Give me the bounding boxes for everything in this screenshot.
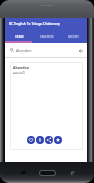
button[interactable]: Abandon	[11, 63, 82, 149]
button[interactable]: Favorite	[27, 136, 35, 144]
button[interactable]: RECENT	[60, 29, 87, 41]
staticText: FAVORITE	[40, 35, 54, 39]
staticText: Abandon	[13, 65, 30, 70]
staticText: RECENT	[68, 35, 79, 39]
button[interactable]: HOME	[5, 29, 33, 41]
staticText: HOME	[15, 35, 24, 39]
staticText: ఆబండన్	[13, 71, 25, 76]
button[interactable]: Bookmark	[54, 136, 62, 144]
staticText: BC English To Telugu Dictionary	[9, 21, 60, 26]
button[interactable]: Home	[40, 171, 55, 175]
staticText: Abandon	[16, 48, 32, 53]
button[interactable]: Back	[77, 47, 84, 54]
button[interactable]: Pronounce	[36, 136, 44, 144]
button[interactable]: Back	[69, 170, 75, 176]
button[interactable]: Share	[45, 136, 53, 144]
button[interactable]: FAVORITE	[33, 29, 60, 41]
